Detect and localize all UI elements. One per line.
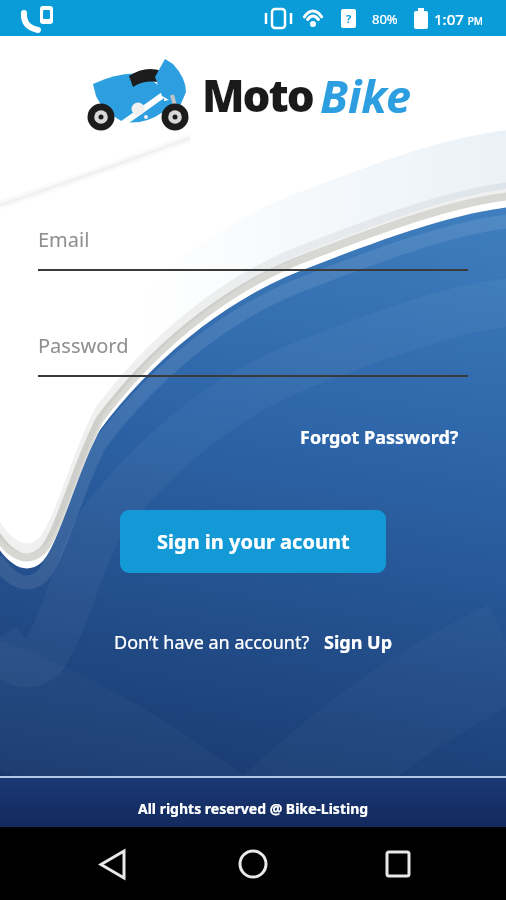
button[interactable]: Sign in your acount bbox=[120, 510, 386, 573]
staticText: Bike bbox=[320, 65, 412, 126]
staticText: 80% bbox=[372, 10, 398, 28]
staticText: Password bbox=[38, 332, 129, 359]
staticText: Sign in your acount bbox=[157, 528, 350, 555]
staticText: Sign Up bbox=[324, 630, 393, 655]
button[interactable]: Forgot Password? bbox=[300, 425, 459, 450]
staticText: Email bbox=[38, 226, 90, 253]
staticText: Don’t have an account? bbox=[114, 630, 310, 655]
staticText: Forgot Password? bbox=[300, 425, 459, 450]
staticText: ? bbox=[346, 11, 352, 26]
staticText: 1:07 PM bbox=[434, 9, 484, 29]
button[interactable]: Sign Up bbox=[324, 630, 393, 655]
staticText: Moto bbox=[202, 65, 313, 125]
staticText: All rights reserved @ Bike-Listing bbox=[138, 799, 369, 818]
